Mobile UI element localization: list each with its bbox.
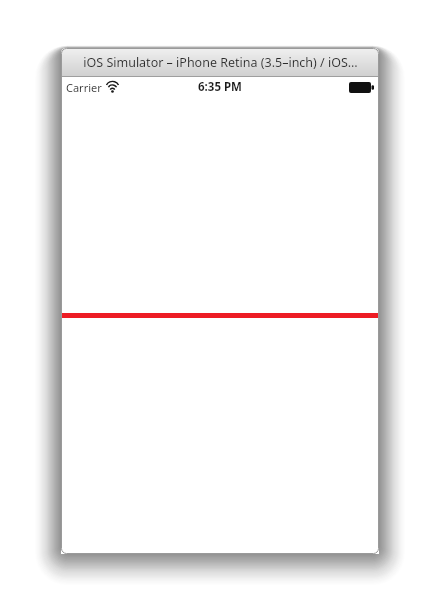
other: Wi-Fi signal	[106, 82, 119, 93]
other: Battery full	[349, 82, 374, 93]
staticText: 6:35 PM	[198, 79, 242, 95]
staticText: iOS Simulator – iPhone Retina (3.5–inch)…	[83, 54, 358, 71]
button[interactable]: iOS Simulator – iPhone Retina (3.5–inch)…	[61, 48, 379, 77]
staticText: Carrier	[66, 80, 102, 95]
